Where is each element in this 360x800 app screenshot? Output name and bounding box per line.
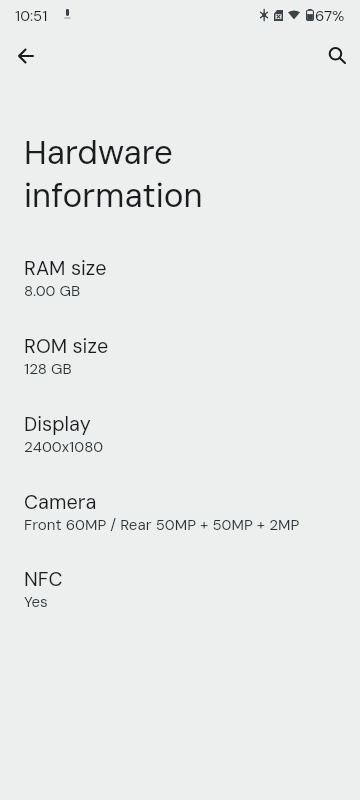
button[interactable]: ROM size — [0, 331, 360, 385]
button[interactable]: NFC — [0, 564, 360, 618]
button[interactable]: Search — [317, 35, 357, 75]
staticText: Yes — [24, 592, 48, 612]
staticText: Hardware information — [24, 132, 203, 218]
staticText: Display — [24, 411, 91, 437]
staticText: ROM size — [24, 333, 109, 359]
staticText: NFC — [24, 566, 63, 592]
staticText: Camera — [24, 489, 97, 515]
staticText: RAM size — [24, 255, 107, 281]
staticText: 8.00 GB — [24, 281, 81, 301]
staticText: 128 GB — [24, 359, 72, 379]
staticText: Front 60MP / Rear 50MP + 50MP + 2MP — [24, 515, 300, 535]
button[interactable]: Display — [0, 409, 360, 463]
staticText: 2400x1080 — [24, 437, 104, 457]
button[interactable]: Camera — [0, 487, 360, 541]
button[interactable]: RAM size — [0, 253, 360, 307]
staticText: 10:51 — [15, 6, 48, 26]
staticText: 67% — [315, 6, 345, 26]
button[interactable]: Back — [6, 36, 46, 76]
